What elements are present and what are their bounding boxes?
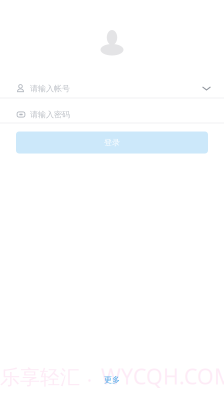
button[interactable]: 请输入密码 (0, 98, 224, 123)
staticText: 更多 (104, 375, 120, 385)
staticText: 乐享轻汇 (0, 365, 80, 390)
button[interactable]: 请输入帐号 (0, 77, 224, 98)
staticText: 请输入密码 (30, 110, 70, 119)
button[interactable]: 登录 (16, 131, 208, 153)
staticText: 登录 (104, 138, 120, 147)
staticText: 请输入帐号 (30, 84, 70, 93)
staticText: WYCQH.COM (101, 362, 224, 390)
staticText: · (87, 367, 92, 392)
